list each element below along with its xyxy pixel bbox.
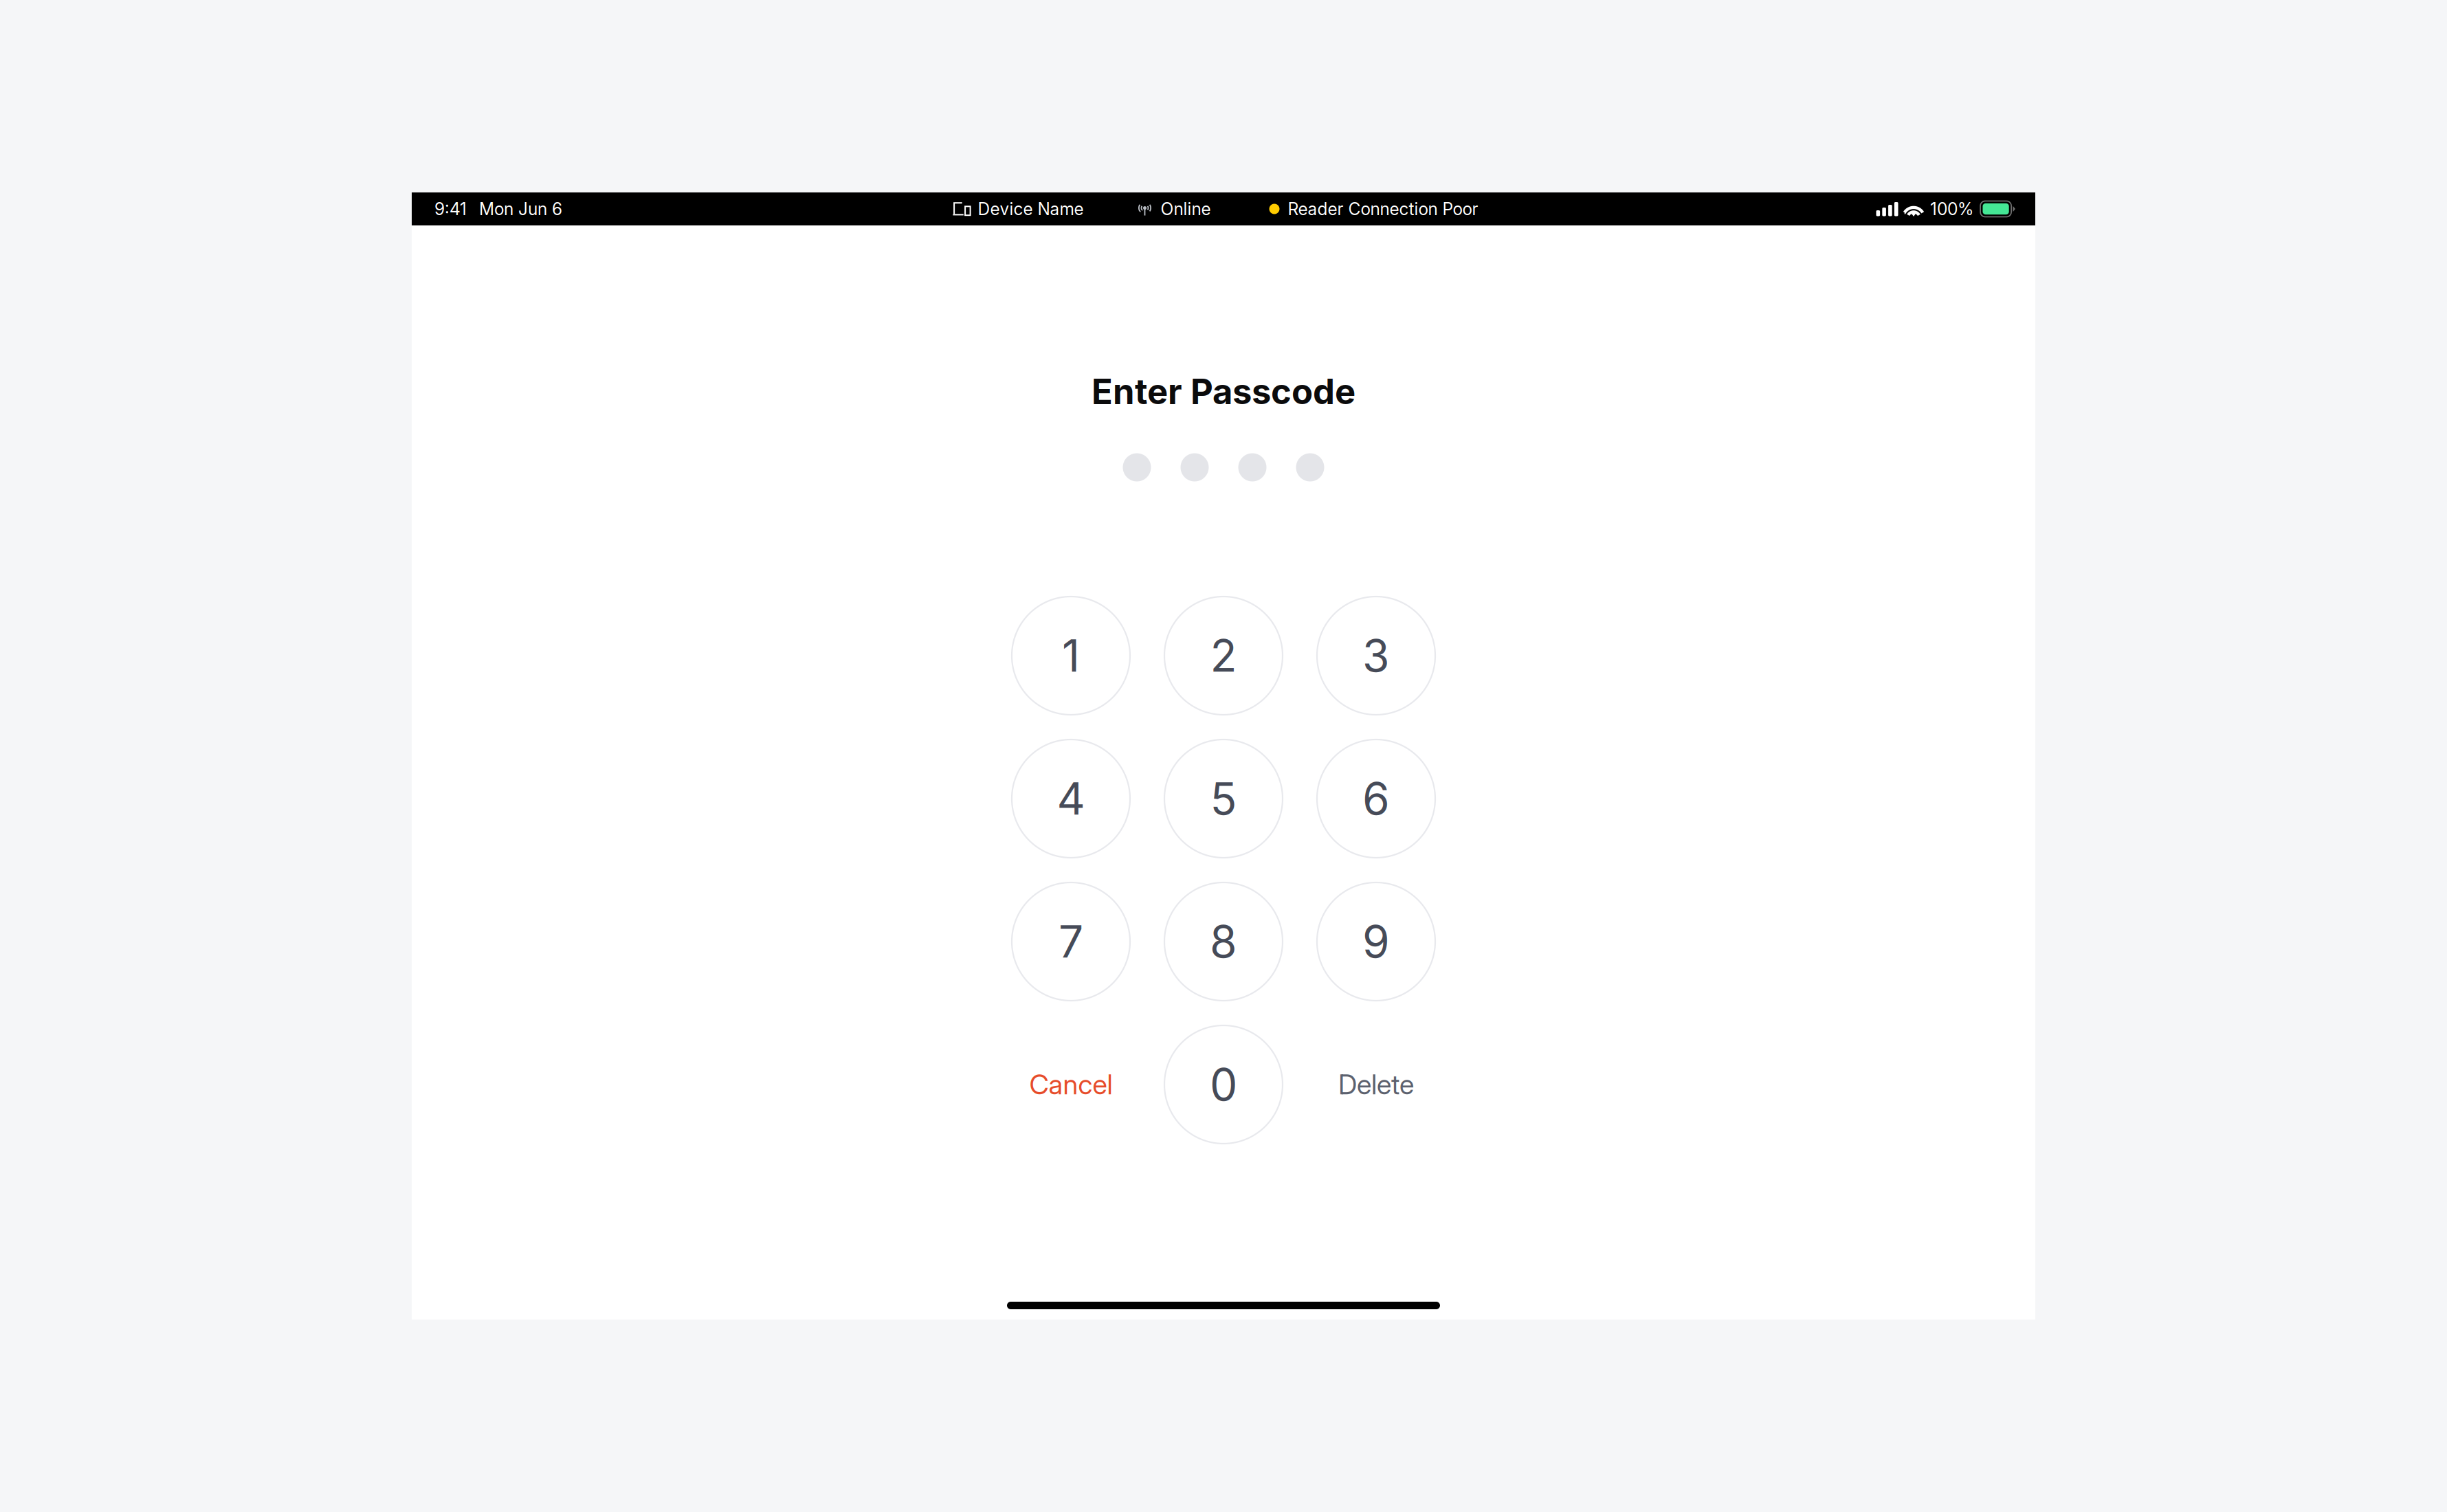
staticText: Device Name xyxy=(978,199,1084,219)
staticText: 7 xyxy=(1059,915,1083,968)
staticText: 2 xyxy=(1210,629,1237,682)
button[interactable]: Cancel xyxy=(1012,1025,1130,1144)
staticText: 3 xyxy=(1362,629,1390,682)
staticText: 8 xyxy=(1210,915,1237,968)
button[interactable]: 3 xyxy=(1317,597,1435,715)
staticText: 1 xyxy=(1062,629,1080,682)
staticText: Mon Jun 6 xyxy=(479,199,562,219)
staticText: Online xyxy=(1161,199,1211,219)
staticText: 6 xyxy=(1362,772,1390,825)
button[interactable]: 1 xyxy=(1012,597,1130,715)
staticText: 9:41 xyxy=(434,199,467,219)
staticText: 5 xyxy=(1210,772,1237,825)
button[interactable]: Delete xyxy=(1317,1025,1435,1144)
staticText: Enter Passcode xyxy=(1092,370,1355,412)
staticText: 9 xyxy=(1362,915,1390,968)
staticText: Cancel xyxy=(1029,1068,1112,1101)
staticText: Reader Connection Poor xyxy=(1288,199,1478,219)
button[interactable]: 4 xyxy=(1012,740,1130,858)
staticText: Delete xyxy=(1338,1068,1414,1101)
button[interactable]: 0 xyxy=(1164,1025,1283,1144)
button[interactable]: 2 xyxy=(1164,597,1283,715)
staticText: 100% xyxy=(1930,199,1973,219)
staticText: 0 xyxy=(1210,1058,1237,1111)
button[interactable]: 7 xyxy=(1012,882,1130,1001)
button[interactable]: 6 xyxy=(1317,740,1435,858)
button[interactable]: 9 xyxy=(1317,882,1435,1001)
button[interactable]: 8 xyxy=(1164,882,1283,1001)
button[interactable]: 5 xyxy=(1164,740,1283,858)
staticText: 4 xyxy=(1057,772,1085,825)
